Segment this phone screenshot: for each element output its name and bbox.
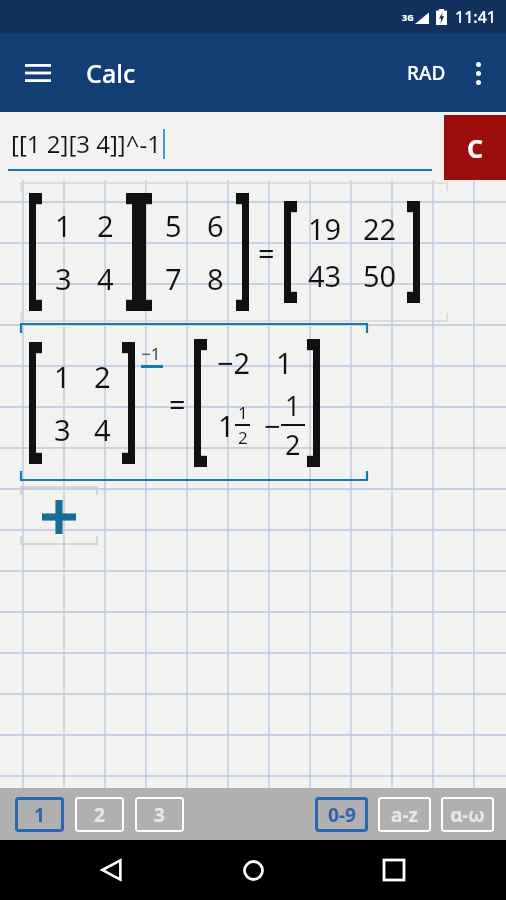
staticText: 1	[55, 206, 72, 245]
button[interactable]: Add new calculation	[20, 484, 98, 550]
staticText: a-z	[391, 802, 418, 828]
staticText: 1	[285, 387, 301, 424]
staticText: 8	[207, 259, 224, 298]
staticText: 50	[363, 256, 397, 295]
staticText: 3	[154, 802, 165, 828]
staticText: 2	[94, 802, 105, 828]
staticText: 4	[97, 259, 114, 298]
staticText: 3	[54, 410, 71, 449]
staticText: 5	[165, 206, 182, 245]
staticText: 1	[276, 343, 293, 382]
staticText: ɑ-ω	[450, 802, 485, 828]
staticText: 4	[94, 410, 111, 449]
staticText: 2	[94, 357, 111, 396]
button[interactable]: Home	[229, 846, 277, 894]
staticText: 43	[308, 256, 342, 295]
staticText: =	[169, 384, 186, 423]
staticText: 0-9	[328, 802, 356, 828]
staticText: 3G	[402, 11, 414, 23]
staticText: RAD	[407, 60, 446, 86]
staticText: −1	[141, 342, 161, 365]
staticText: 22	[363, 209, 397, 248]
button[interactable]: Open navigation menu	[12, 47, 64, 99]
staticText: 2	[238, 426, 248, 449]
staticText: 11:41	[455, 6, 496, 28]
button[interactable]: 0-9	[315, 797, 368, 832]
button[interactable]: Recent apps	[370, 846, 418, 894]
staticText: 7	[165, 259, 182, 298]
staticText: −2	[217, 343, 251, 382]
staticText: C	[467, 131, 484, 165]
button[interactable]: 3	[135, 797, 184, 832]
staticText: Calc	[86, 56, 136, 90]
button[interactable]: RAD	[399, 50, 454, 96]
staticText: [[1 2][3 4]]^-1	[11, 127, 161, 160]
staticText: −	[264, 406, 281, 445]
button[interactable]: 2	[75, 797, 124, 832]
staticText: 6	[207, 206, 224, 245]
staticText: 1	[238, 401, 248, 424]
button[interactable]: a-z	[378, 797, 431, 832]
staticText: 1	[54, 357, 71, 396]
button[interactable]: More options	[454, 49, 502, 97]
staticText: =	[258, 233, 275, 272]
button[interactable]: 1	[0, 182, 506, 322]
button[interactable]: ɑ-ω	[441, 797, 494, 832]
staticText: 1	[218, 406, 235, 445]
staticText: 3	[55, 259, 72, 298]
staticText: 2	[285, 426, 301, 463]
staticText: 2	[97, 206, 114, 245]
button[interactable]: C	[444, 115, 506, 180]
staticText: 19	[308, 209, 342, 248]
button[interactable]: Back	[88, 846, 136, 894]
staticText: 1	[34, 802, 45, 828]
button[interactable]: 1	[15, 797, 64, 832]
button[interactable]: 1	[0, 322, 506, 484]
